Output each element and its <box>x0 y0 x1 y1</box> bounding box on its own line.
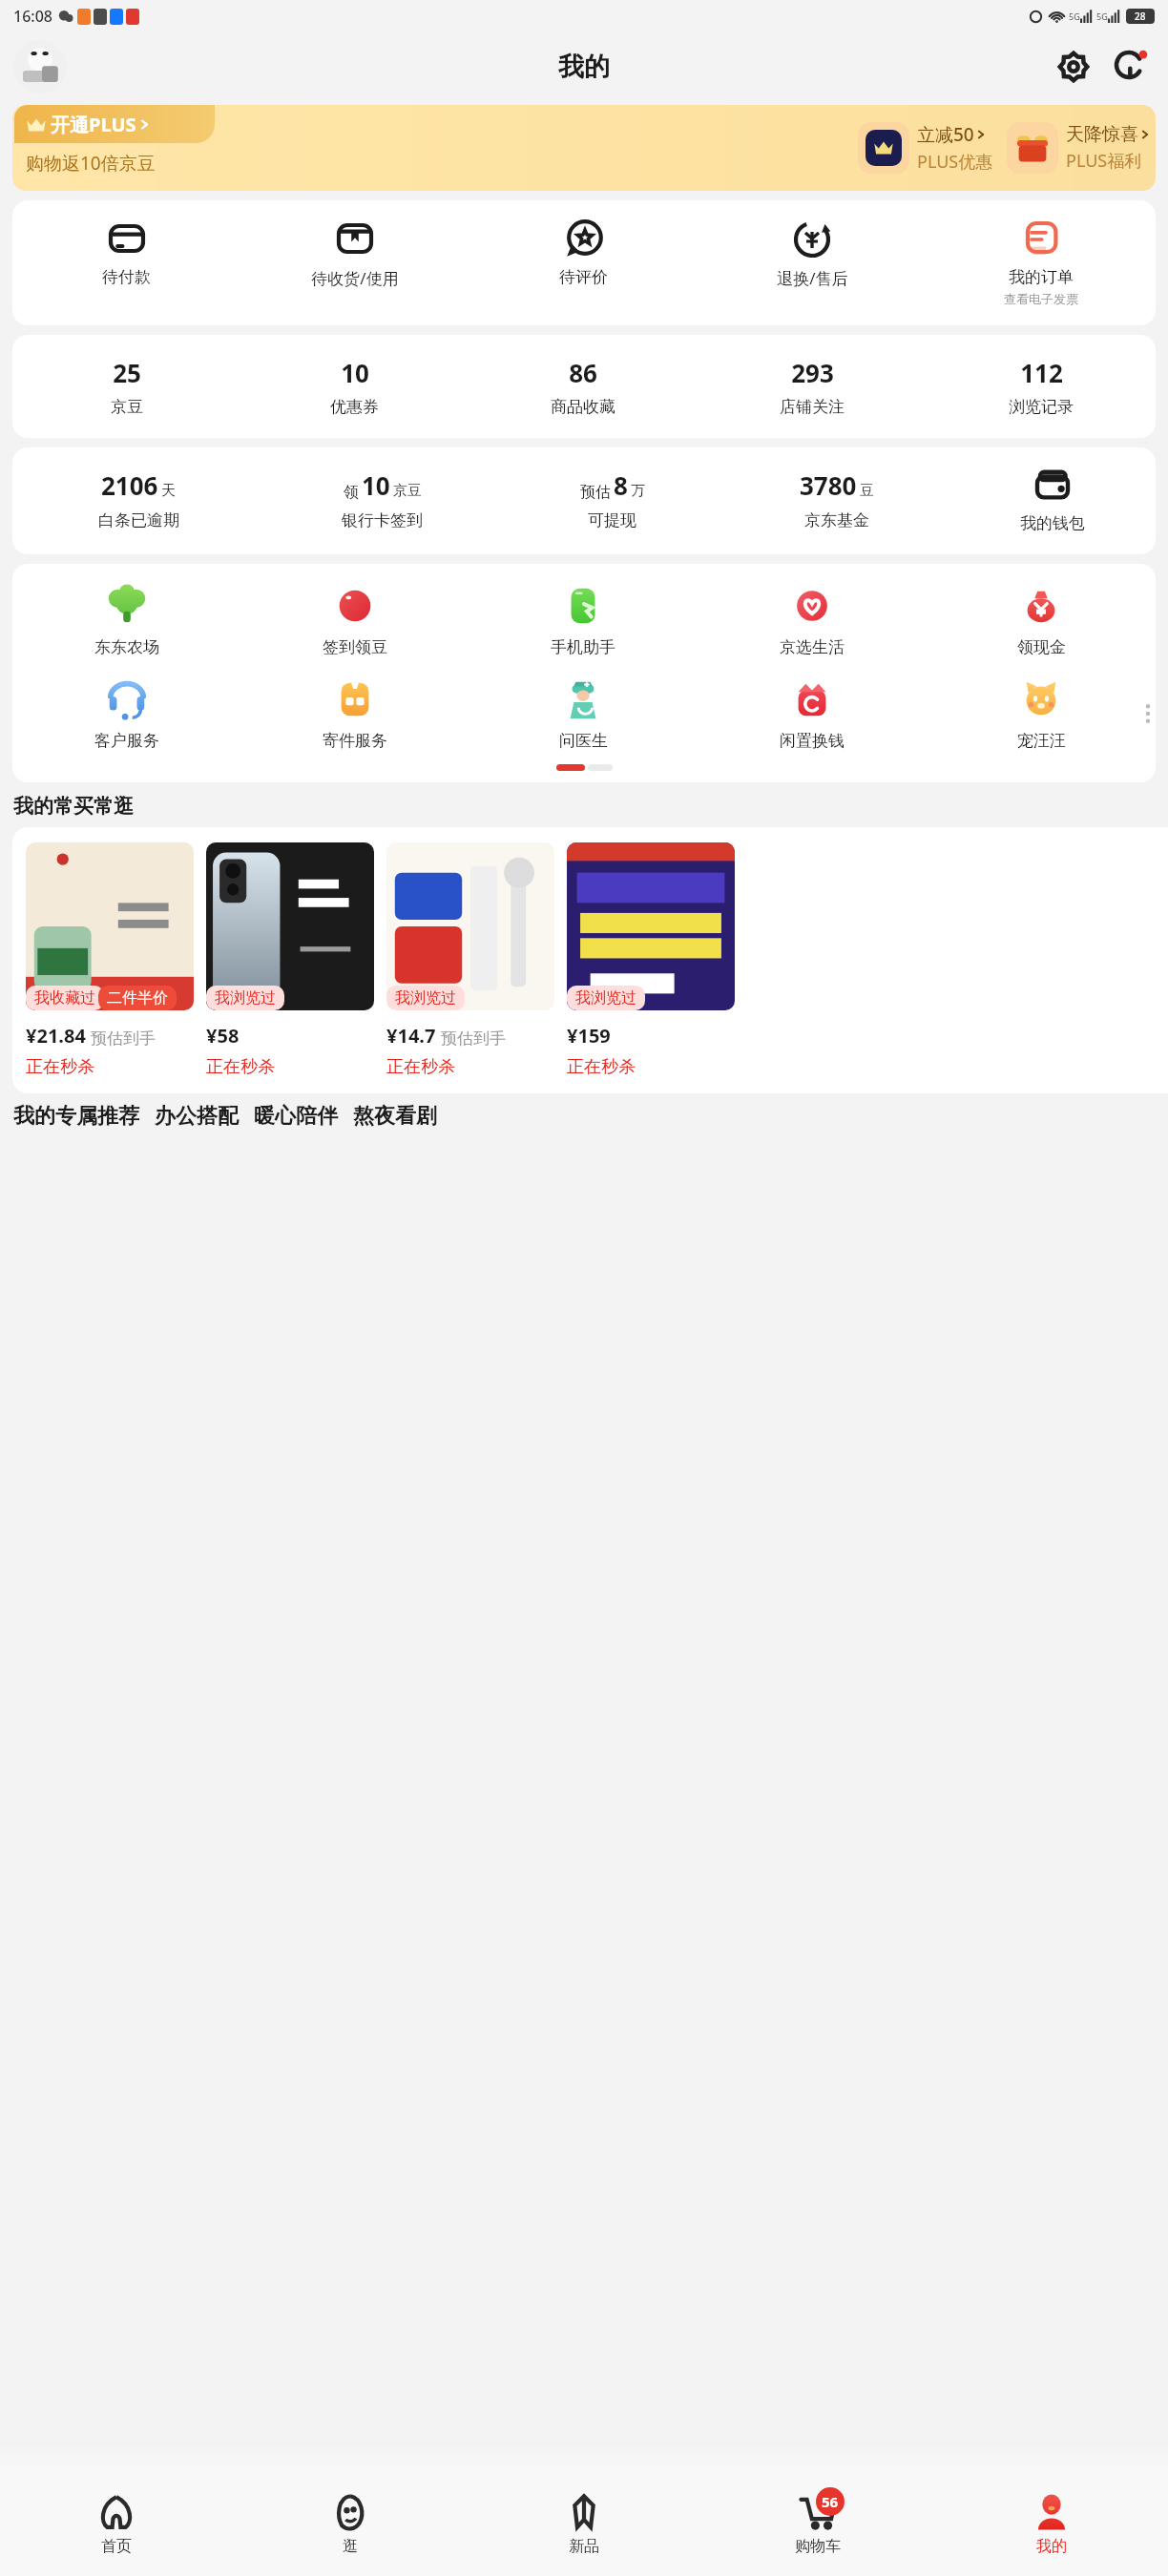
button[interactable]: 领 <box>264 468 500 530</box>
button[interactable]: 我浏览过 <box>567 842 735 1078</box>
button[interactable]: 头像 <box>13 40 67 93</box>
button[interactable]: 领现金 <box>927 583 1156 657</box>
staticText: 我的常买常逛 <box>13 794 134 819</box>
button[interactable]: 新品 <box>467 2469 700 2576</box>
staticText: 我浏览过 <box>395 988 456 1008</box>
staticText: 正在秒杀 <box>386 1056 455 1078</box>
staticText: 待收货/使用 <box>311 267 399 289</box>
button[interactable]: 逛 <box>233 2469 467 2576</box>
staticText: 二件半价 <box>107 988 168 1008</box>
button[interactable]: 我收藏过 <box>26 842 194 1078</box>
button[interactable]: 我浏览过 <box>206 842 374 1078</box>
staticText: 预估到手 <box>91 1028 156 1049</box>
button[interactable]: 我的订单 <box>927 219 1156 306</box>
staticText: 25 <box>113 356 141 389</box>
button[interactable]: 待评价 <box>469 219 698 287</box>
button[interactable]: 首页 <box>0 2469 233 2576</box>
staticText: 我的专属推荐 <box>13 1103 139 1130</box>
button[interactable]: 2106 <box>12 468 264 530</box>
staticText: 我的 <box>558 51 610 83</box>
button[interactable]: 我的钱包 <box>949 468 1156 533</box>
staticText: 签到领豆 <box>323 637 387 657</box>
staticText: 领 <box>344 483 359 502</box>
staticText: 可提现 <box>588 510 636 530</box>
button[interactable]: 待付款 <box>12 219 240 287</box>
button[interactable]: 东东农场 <box>12 583 240 657</box>
staticText: 8 <box>614 468 628 502</box>
staticText: 手机助手 <box>551 637 615 657</box>
staticText: 86 <box>569 356 597 389</box>
button[interactable]: 客服消息 <box>1109 45 1153 89</box>
staticText: 立减50 <box>917 122 974 147</box>
staticText: 新品 <box>569 2537 599 2556</box>
button[interactable]: 我的 <box>934 2469 1168 2576</box>
staticText: 293 <box>791 356 834 389</box>
staticText: 银行卡签到 <box>342 510 423 530</box>
staticText: 16:08 <box>13 6 52 27</box>
staticText: 逛 <box>343 2537 358 2556</box>
staticText: 我的 <box>1036 2537 1067 2556</box>
staticText: 待评价 <box>559 267 608 287</box>
button[interactable]: 退换/售后 <box>698 219 927 289</box>
staticText: 领现金 <box>1017 637 1066 657</box>
staticText: 闲置换钱 <box>780 731 845 751</box>
button[interactable]: 宠汪汪 <box>927 676 1156 751</box>
staticText: 10 <box>341 356 369 389</box>
button[interactable]: 我浏览过 <box>386 842 554 1078</box>
button[interactable]: 手机助手 <box>469 583 698 657</box>
staticText: 宠汪汪 <box>1017 731 1066 751</box>
button[interactable]: 25 <box>12 356 240 417</box>
staticText: 10 <box>362 468 390 502</box>
staticText: 京选生活 <box>780 637 845 657</box>
button[interactable]: 客户服务 <box>12 676 240 751</box>
staticText: 京豆 <box>393 482 422 500</box>
staticText: 熬夜看剧 <box>353 1103 437 1130</box>
staticText: 暖心陪伴 <box>254 1103 338 1130</box>
staticText: 我的钱包 <box>1020 513 1085 533</box>
staticText: 天 <box>161 482 176 500</box>
staticText: 店铺关注 <box>780 397 845 417</box>
staticText: ¥14.7 <box>386 1023 436 1049</box>
button[interactable]: 问医生 <box>469 676 698 751</box>
staticText: 豆 <box>860 482 874 500</box>
staticText: 开通PLUS <box>51 112 136 137</box>
button[interactable]: 天降惊喜 <box>1007 122 1150 174</box>
staticText: PLUS福利 <box>1066 149 1142 173</box>
staticText: 白条已逾期 <box>98 510 179 530</box>
button[interactable]: 56 <box>700 2469 934 2576</box>
button[interactable]: 设置 <box>1052 45 1095 89</box>
staticText: 正在秒杀 <box>26 1056 94 1078</box>
button[interactable]: 立减50 <box>858 122 993 174</box>
staticText: 查看电子发票 <box>1004 291 1078 306</box>
staticText: 28 <box>1135 10 1146 23</box>
staticText: 我的订单 <box>1009 267 1074 287</box>
staticText: 东东农场 <box>94 637 159 657</box>
button[interactable]: 预估 <box>500 468 724 530</box>
staticText: 万 <box>631 482 645 500</box>
staticText: 5G <box>1069 10 1080 22</box>
staticText: 56 <box>822 2492 839 2511</box>
staticText: 2106 <box>101 468 158 502</box>
button[interactable]: 闲置换钱 <box>698 676 927 751</box>
button[interactable]: 寄件服务 <box>240 676 469 751</box>
staticText: 天降惊喜 <box>1066 123 1138 146</box>
staticText: 购物车 <box>795 2537 841 2556</box>
button[interactable]: 签到领豆 <box>240 583 469 657</box>
staticText: 3780 <box>800 468 857 502</box>
button[interactable]: 112 <box>927 356 1156 417</box>
staticText: ¥159 <box>567 1023 611 1049</box>
button[interactable]: 10 <box>240 356 469 417</box>
staticText: PLUS优惠 <box>917 150 993 174</box>
staticText: ¥58 <box>206 1023 240 1049</box>
staticText: 寄件服务 <box>323 731 387 751</box>
staticText: 退换/售后 <box>777 267 848 289</box>
button[interactable]: 待收货/使用 <box>240 219 469 289</box>
staticText: 客户服务 <box>94 731 159 751</box>
button[interactable]: 293 <box>698 356 927 417</box>
staticText: 待付款 <box>102 267 151 287</box>
button[interactable]: 开通PLUS <box>12 105 1156 191</box>
button[interactable]: 86 <box>469 356 698 417</box>
staticText: 我浏览过 <box>575 988 636 1008</box>
button[interactable]: 京选生活 <box>698 583 927 657</box>
button[interactable]: 3780 <box>724 468 949 530</box>
